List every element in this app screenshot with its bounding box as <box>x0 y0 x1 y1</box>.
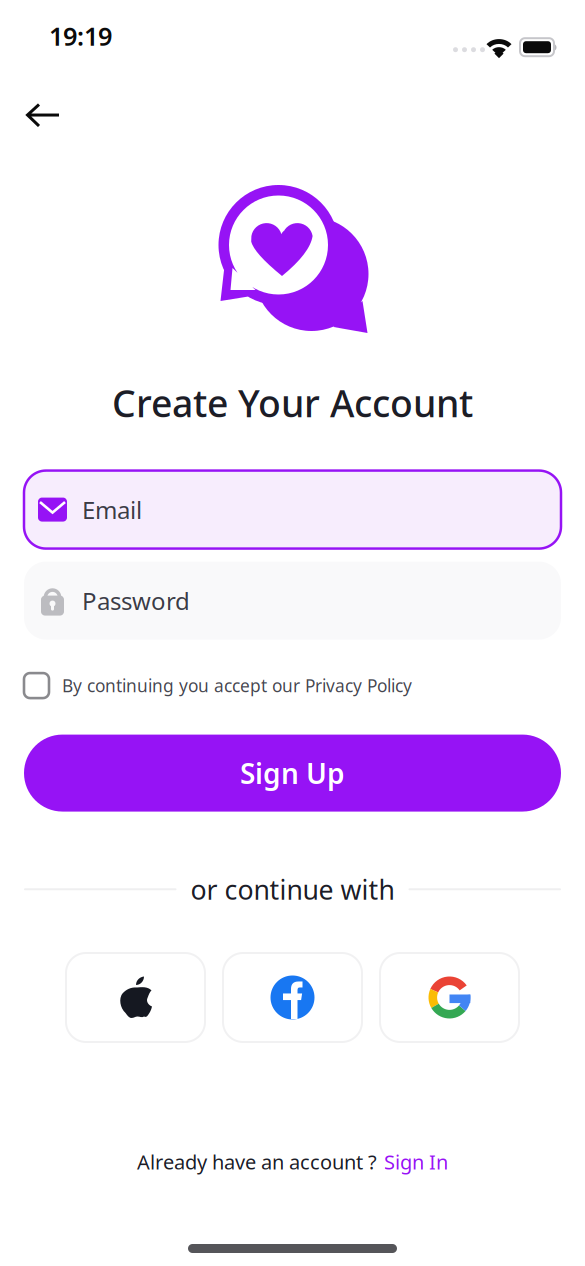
staticText: Password <box>82 585 190 616</box>
button[interactable]: Continue with Google <box>380 953 519 1042</box>
button[interactable]: Continue with Facebook <box>223 953 362 1042</box>
button[interactable]: By continuing you accept our Privacy Pol… <box>0 640 585 712</box>
button[interactable]: Sign Up <box>0 712 585 812</box>
button[interactable]: Already have an account ? <box>117 1138 468 1185</box>
staticText: Email <box>82 494 142 525</box>
staticText: Already have an account ? <box>137 1148 377 1175</box>
button[interactable]: Continue with Apple <box>66 953 205 1042</box>
staticText: Create Your Account <box>112 378 473 428</box>
button[interactable]: Back <box>12 87 74 143</box>
staticText: or continue with <box>190 872 394 907</box>
staticText: Sign Up <box>240 754 345 792</box>
staticText: 19:19 <box>49 19 112 53</box>
staticText: Sign In <box>384 1148 448 1175</box>
staticText: By continuing you accept our Privacy Pol… <box>62 674 412 697</box>
